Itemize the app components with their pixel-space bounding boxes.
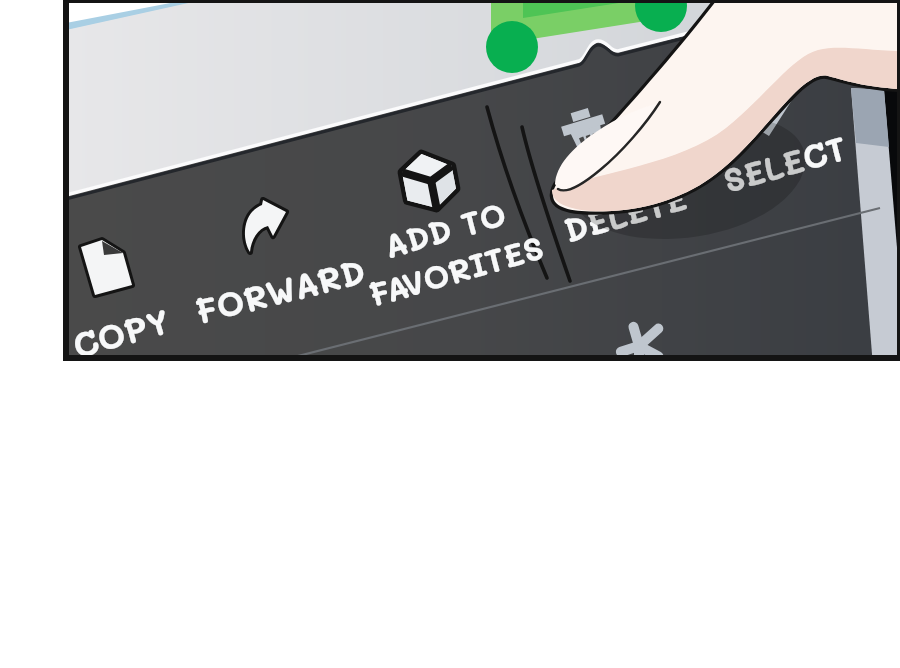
button[interactable] <box>0 0 900 668</box>
